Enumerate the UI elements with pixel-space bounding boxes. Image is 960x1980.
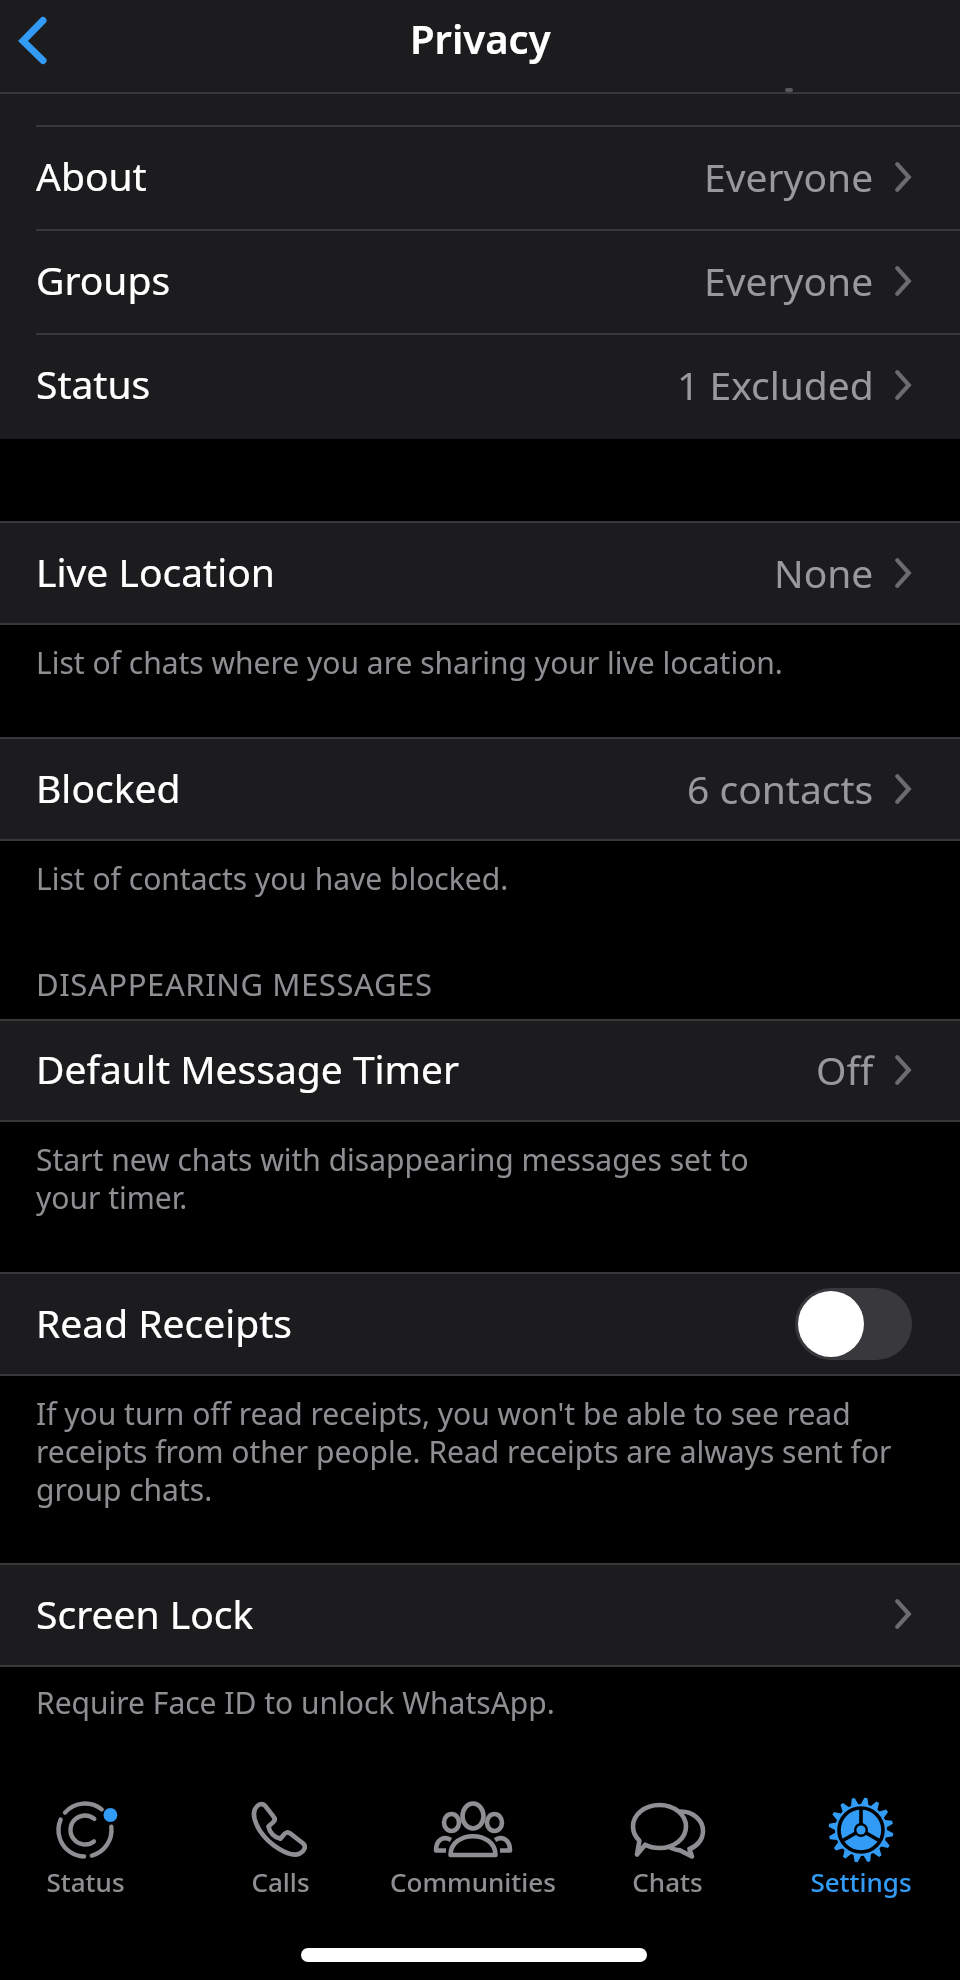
staticText: Groups [36,253,171,306]
button[interactable]: Status [0,333,960,437]
button[interactable]: Communities [377,1786,569,1902]
staticText: Screen Lock [36,1587,254,1640]
button[interactable]: Status [0,1786,181,1902]
staticText: 1 Excluded [677,358,874,411]
staticText: None [774,546,874,599]
button[interactable]: Screen Lock [0,1563,960,1667]
button[interactable]: Default Message Timer [0,1019,960,1122]
button[interactable]: Groups [0,229,960,333]
button[interactable]: Read Receipts [0,1272,960,1376]
staticText: Blocked [36,761,181,814]
staticText: Privacy [410,11,551,65]
staticText: Status [36,357,151,410]
button[interactable]: Live Location [0,521,960,625]
staticText: List of chats where you are sharing your… [36,642,936,683]
staticText: Calls [251,1864,310,1899]
staticText: Settings [810,1864,912,1899]
staticText: Chats [632,1864,703,1899]
button[interactable]: Read Receipts toggle, off [795,1288,912,1360]
button[interactable]: Back [0,0,80,92]
button[interactable]: About [0,125,960,229]
staticText: Status [46,1864,125,1899]
staticText: Default Message Timer [36,1042,460,1095]
staticText: 6 contacts [687,762,874,815]
staticText: Off [816,1043,874,1096]
staticText: Require Face ID to unlock WhatsApp. [36,1682,936,1723]
staticText: Live Location [36,545,275,598]
staticText: Start new chats with disappearing messag… [36,1139,936,1218]
staticText: Communities [390,1864,556,1899]
staticText: Everyone [704,150,874,203]
button[interactable]: Settings [765,1786,957,1902]
staticText: If you turn off read receipts, you won't… [36,1393,936,1510]
staticText: Everyone [704,254,874,307]
button[interactable]: Chats [571,1786,763,1902]
staticText: List of contacts you have blocked. [36,858,936,899]
staticText: About [36,149,147,202]
button[interactable]: Blocked [0,737,960,841]
staticText: Read Receipts [36,1296,293,1349]
button[interactable]: Calls [184,1786,376,1902]
staticText: DISAPPEARING MESSAGES [36,963,433,1005]
